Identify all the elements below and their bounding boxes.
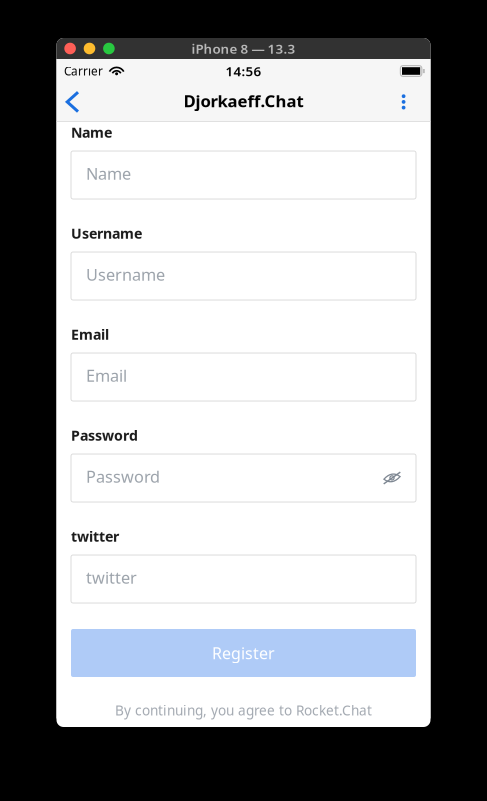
button[interactable]: Name [71, 151, 416, 199]
staticText: twitter [71, 527, 119, 546]
staticText: Password [86, 465, 160, 487]
button[interactable]: Back [56, 85, 102, 122]
staticText: Username [86, 263, 165, 285]
staticText: Email [71, 325, 109, 344]
staticText: Username [71, 224, 142, 243]
staticText: Name [71, 123, 112, 142]
staticText: iPhone 8 — 13.3 [191, 39, 295, 58]
staticText: twitter [86, 566, 137, 588]
staticText: Password [71, 426, 138, 445]
button[interactable]: twitter [71, 555, 416, 603]
staticText: Register [212, 642, 275, 664]
staticText: 14:56 [225, 62, 261, 80]
button[interactable]: Username [71, 252, 416, 300]
staticText: Djorkaeff.Chat [183, 89, 303, 112]
button[interactable]: Email [71, 353, 416, 401]
staticText: Name [86, 162, 131, 184]
button[interactable]: Register [71, 629, 416, 677]
staticText: By continuing, you agree to Rocket.Chat [115, 701, 372, 719]
button[interactable]: More options [384, 85, 430, 122]
staticText: Carrier [64, 63, 103, 79]
button[interactable]: Password [71, 454, 416, 502]
staticText: Email [86, 364, 127, 386]
